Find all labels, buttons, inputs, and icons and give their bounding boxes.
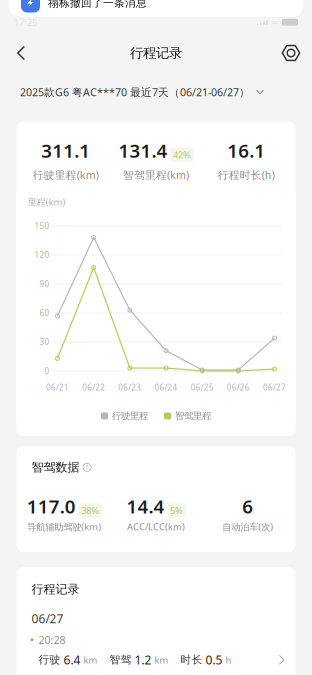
button[interactable]: 20:28 bbox=[16, 627, 295, 675]
staticText: 导航辅助驾驶(km) bbox=[27, 520, 101, 533]
staticText: 里程(km) bbox=[27, 196, 65, 208]
staticText: 38% bbox=[81, 504, 99, 516]
staticText: 禤栋撤回了一条消息 bbox=[48, 0, 147, 9]
staticText: 5% bbox=[170, 504, 183, 516]
staticText: 时长 bbox=[168, 653, 205, 666]
staticText: km bbox=[83, 654, 97, 666]
staticText: 0 bbox=[44, 366, 49, 376]
staticText: 42% bbox=[173, 148, 191, 161]
staticText: ACC/LCC(km) bbox=[127, 520, 185, 533]
staticText: ≈ bbox=[271, 17, 279, 27]
staticText: km bbox=[154, 654, 168, 666]
staticText: 06/21 bbox=[46, 382, 69, 393]
staticText: 30 bbox=[39, 337, 49, 347]
staticText: 行程记录 bbox=[31, 582, 79, 597]
staticText: 06/26 bbox=[227, 382, 250, 393]
staticText: 6 bbox=[242, 494, 253, 518]
staticText: 智驾里程(km) bbox=[123, 168, 189, 182]
staticText: 131.4 bbox=[118, 138, 167, 163]
staticText: 150 bbox=[34, 221, 49, 231]
staticText: 行程记录 bbox=[130, 45, 182, 61]
staticText: 60 bbox=[39, 308, 49, 318]
staticText: 06/24 bbox=[154, 382, 177, 393]
staticText: 20:28 bbox=[38, 633, 65, 647]
staticText: 06/27 bbox=[263, 382, 286, 393]
staticText: 06/27 bbox=[31, 611, 63, 627]
staticText: 自动泊车(次) bbox=[222, 520, 273, 533]
staticText: 行驶 bbox=[38, 653, 63, 666]
staticText: 311.1 bbox=[41, 138, 90, 163]
staticText: ? bbox=[85, 463, 88, 472]
staticText: 行驶里程(km) bbox=[33, 168, 99, 182]
staticText: 06/23 bbox=[118, 382, 141, 393]
staticText: 14.4 bbox=[126, 494, 164, 518]
staticText: 行驶里程 bbox=[112, 410, 148, 422]
staticText: 17:25 bbox=[14, 16, 37, 28]
staticText: 智驾数据 bbox=[31, 460, 79, 475]
staticText: 0.5 bbox=[205, 652, 225, 668]
staticText: 智驾 bbox=[97, 653, 134, 666]
staticText: 06/25 bbox=[191, 382, 214, 393]
button[interactable]: 设置 bbox=[270, 33, 312, 73]
staticText: 1.2 bbox=[134, 652, 154, 668]
staticText: 行程时长(h) bbox=[218, 168, 275, 182]
button[interactable]: 2025款G6 粤AC***70 最近7天（06/21-06/27） bbox=[0, 73, 312, 107]
staticText: 智驾里程 bbox=[175, 410, 211, 422]
staticText: 120 bbox=[34, 250, 49, 260]
staticText: h bbox=[225, 654, 231, 666]
staticText: 16.1 bbox=[227, 138, 265, 163]
staticText: 2025款G6 粤AC***70 最近7天（06/21-06/27） bbox=[20, 85, 250, 99]
button[interactable]: 返回 bbox=[0, 33, 42, 73]
staticText: 90 bbox=[39, 279, 49, 289]
staticText: 117.0 bbox=[27, 494, 76, 518]
staticText: 6.4 bbox=[63, 652, 83, 668]
staticText: 06/22 bbox=[82, 382, 105, 393]
